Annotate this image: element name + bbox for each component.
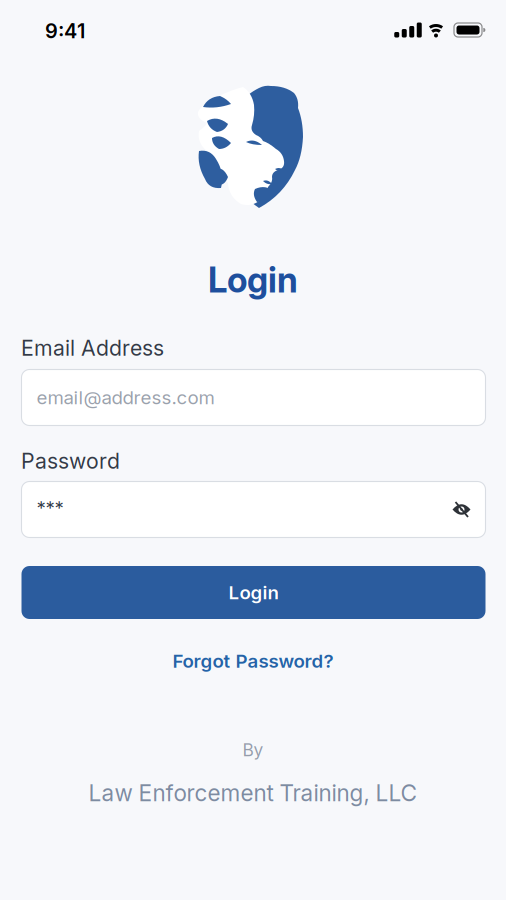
staticText: email@address.com bbox=[36, 386, 214, 408]
staticText: *** bbox=[36, 496, 63, 518]
staticText: Law Enforcement Training, LLC bbox=[88, 780, 417, 806]
button[interactable]: *** bbox=[21, 481, 485, 537]
button[interactable]: Login bbox=[21, 566, 485, 619]
staticText: Login bbox=[228, 581, 278, 603]
button[interactable]: Show password bbox=[451, 501, 485, 517]
button[interactable]: Forgot Password? bbox=[172, 650, 333, 672]
staticText: Forgot Password? bbox=[172, 650, 333, 672]
staticText: Login bbox=[208, 260, 298, 300]
staticText: By bbox=[242, 740, 263, 760]
staticText: Email Address bbox=[21, 335, 164, 361]
staticText: 9:41 bbox=[45, 19, 85, 43]
button[interactable]: email@address.com bbox=[21, 369, 485, 425]
staticText: Password bbox=[21, 448, 120, 474]
